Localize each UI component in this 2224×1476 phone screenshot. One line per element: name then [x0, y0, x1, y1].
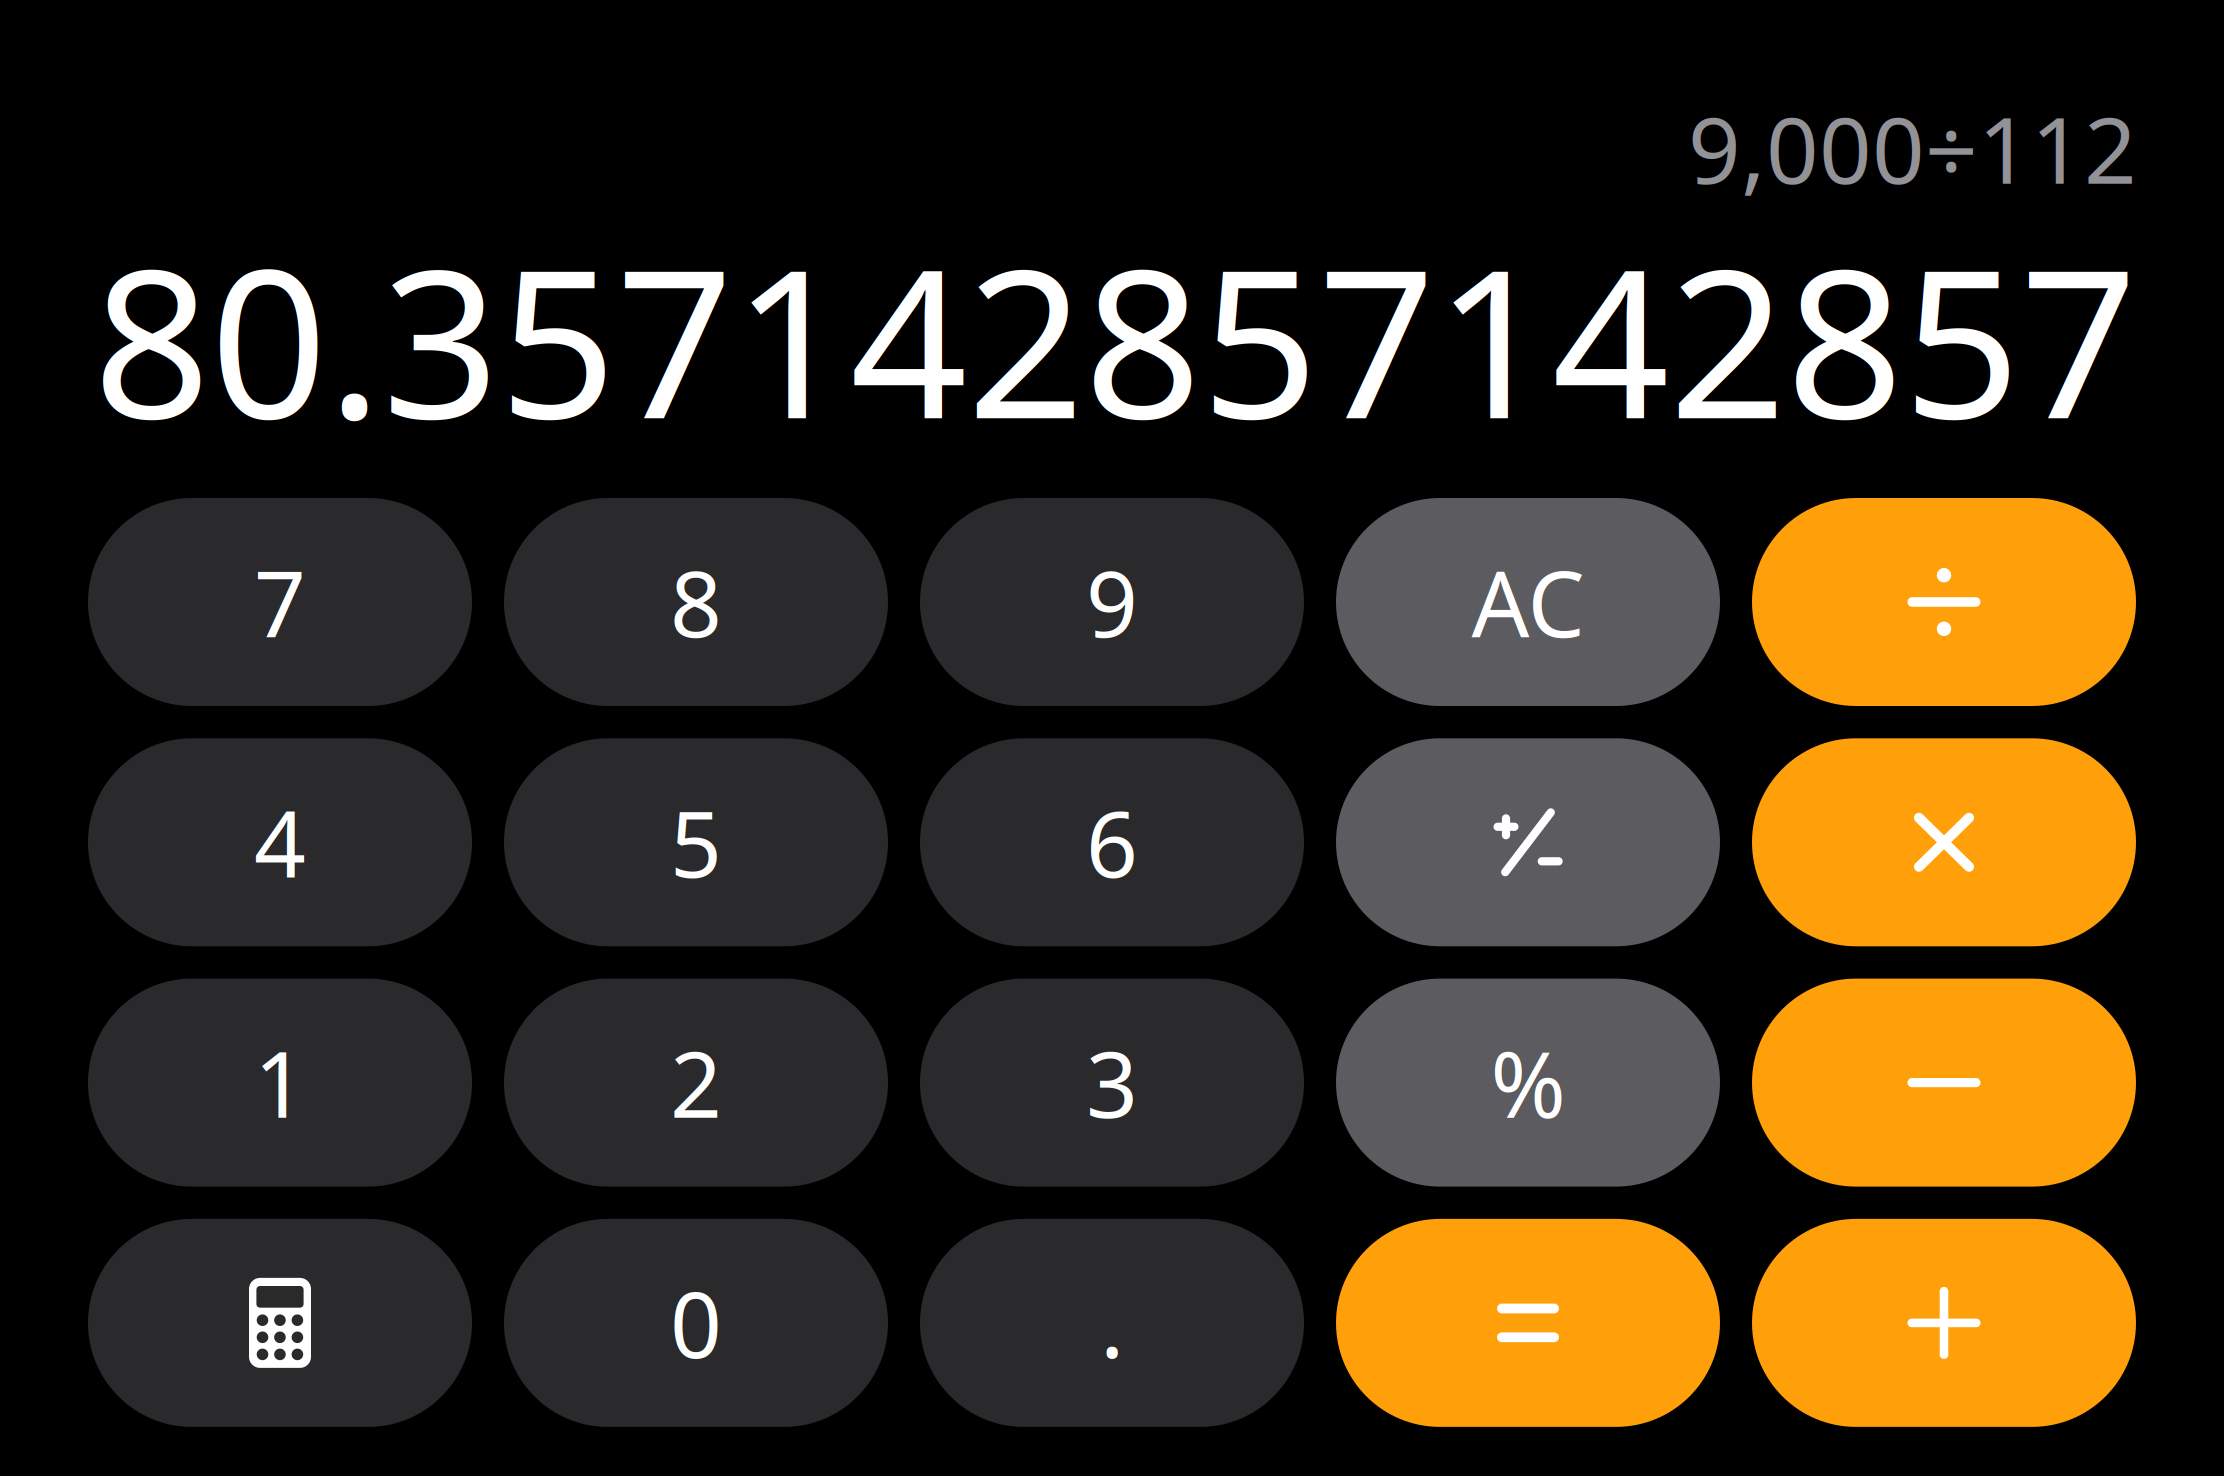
- button[interactable]: %: [1336, 979, 1720, 1187]
- staticText: 3: [1086, 1022, 1138, 1143]
- staticText: 5: [670, 782, 722, 902]
- staticText: 0: [670, 1263, 722, 1383]
- staticText: 4: [254, 782, 306, 902]
- button[interactable]: Subtract: [1752, 979, 2136, 1187]
- button[interactable]: Equals: [1336, 1219, 1720, 1427]
- staticText: 7: [254, 542, 306, 662]
- staticText: 9: [1086, 542, 1138, 662]
- button[interactable]: 5: [504, 738, 888, 946]
- button[interactable]: 6: [920, 738, 1304, 946]
- button[interactable]: Divide: [1752, 498, 2136, 706]
- button[interactable]: 0: [504, 1219, 888, 1427]
- button[interactable]: 9: [920, 498, 1304, 706]
- staticText: 8: [670, 542, 722, 662]
- button[interactable]: .: [920, 1219, 1304, 1427]
- button[interactable]: 1: [88, 979, 472, 1187]
- staticText: 2: [670, 1022, 722, 1143]
- button[interactable]: Calculator: [88, 1219, 472, 1427]
- button[interactable]: 3: [920, 979, 1304, 1187]
- staticText: 9,000÷112: [1688, 87, 2137, 209]
- button[interactable]: Multiply: [1752, 738, 2136, 946]
- staticText: 1: [254, 1022, 306, 1143]
- button[interactable]: Plus minus: [1336, 738, 1720, 946]
- staticText: .: [1100, 1263, 1124, 1383]
- staticText: 6: [1086, 782, 1138, 902]
- button[interactable]: 8: [504, 498, 888, 706]
- button[interactable]: 2: [504, 979, 888, 1187]
- staticText: %: [1490, 1022, 1565, 1143]
- staticText: 80.357142857142857: [93, 202, 2137, 475]
- button[interactable]: Add: [1752, 1219, 2136, 1427]
- button[interactable]: 7: [88, 498, 472, 706]
- button[interactable]: 4: [88, 738, 472, 946]
- staticText: AC: [1471, 542, 1584, 662]
- button[interactable]: AC: [1336, 498, 1720, 706]
